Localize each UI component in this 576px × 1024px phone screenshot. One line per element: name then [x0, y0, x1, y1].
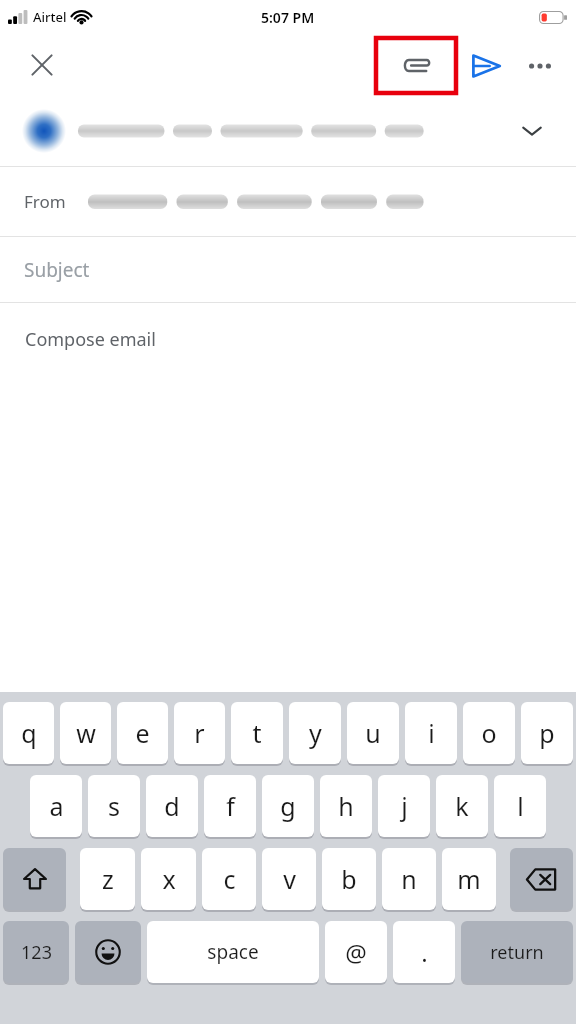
button[interactable]: i — [405, 702, 457, 764]
button[interactable]: Compose email — [0, 303, 576, 375]
button[interactable]: Emoji — [75, 921, 141, 983]
button[interactable]: r — [174, 702, 225, 764]
button[interactable]: v — [262, 848, 316, 910]
button[interactable]: return — [461, 921, 573, 983]
staticText: o — [481, 716, 497, 750]
button[interactable]: t — [231, 702, 283, 764]
button[interactable]: space — [147, 921, 319, 983]
button[interactable]: Expand recipients — [510, 109, 554, 153]
button[interactable]: x — [141, 848, 196, 910]
staticText: y — [309, 716, 322, 750]
button[interactable]: From — [0, 167, 576, 236]
button[interactable]: Close — [14, 37, 70, 93]
button[interactable]: m — [442, 848, 496, 910]
staticText: d — [164, 789, 180, 823]
button[interactable]: s — [88, 775, 140, 837]
button[interactable]: . — [393, 921, 455, 983]
button[interactable]: h — [320, 775, 372, 837]
button[interactable]: Send — [460, 40, 512, 92]
staticText: Airtel — [33, 8, 67, 26]
button[interactable]: Expand recipients — [0, 96, 576, 166]
staticText: Subject — [24, 257, 90, 283]
staticText: g — [280, 789, 296, 823]
staticText: v — [283, 862, 296, 896]
staticText: e — [135, 716, 150, 750]
button[interactable]: n — [382, 848, 436, 910]
staticText: r — [194, 716, 205, 750]
button[interactable]: b — [322, 848, 376, 910]
button[interactable]: c — [202, 848, 256, 910]
staticText: l — [517, 789, 524, 823]
button[interactable]: f — [204, 775, 256, 837]
button[interactable]: Attach file — [376, 38, 456, 93]
staticText: h — [338, 789, 354, 823]
button[interactable]: q — [3, 702, 54, 764]
staticText: From — [24, 190, 66, 213]
staticText: w — [76, 716, 96, 750]
staticText: x — [162, 862, 176, 896]
staticText: t — [252, 716, 262, 750]
button[interactable]: z — [80, 848, 135, 910]
staticText: a — [49, 789, 64, 823]
staticText: Compose email — [25, 327, 156, 352]
staticText: 5:07 PM — [261, 8, 315, 27]
button[interactable]: l — [494, 775, 546, 837]
button[interactable]: y — [289, 702, 341, 764]
staticText: z — [102, 862, 114, 896]
staticText: 123 — [21, 940, 52, 965]
staticText: return — [490, 940, 544, 965]
staticText: . — [421, 936, 428, 969]
staticText: j — [401, 789, 408, 823]
button[interactable]: k — [436, 775, 488, 837]
staticText: k — [455, 789, 469, 823]
button[interactable]: w — [60, 702, 111, 764]
staticText: c — [223, 862, 236, 896]
button[interactable]: d — [146, 775, 198, 837]
button[interactable]: a — [30, 775, 82, 837]
button[interactable]: Shift — [3, 848, 66, 910]
staticText: space — [207, 939, 259, 965]
staticText: m — [457, 862, 481, 896]
button[interactable]: p — [521, 702, 573, 764]
button[interactable]: 123 — [3, 921, 69, 983]
button[interactable]: @ — [325, 921, 387, 983]
button[interactable]: j — [378, 775, 430, 837]
staticText: b — [341, 862, 357, 896]
button[interactable]: o — [463, 702, 515, 764]
button[interactable]: g — [262, 775, 314, 837]
button[interactable]: Delete — [510, 848, 573, 910]
button[interactable]: More options — [514, 40, 566, 92]
staticText: f — [226, 789, 235, 823]
staticText: s — [108, 789, 120, 823]
staticText: p — [539, 716, 555, 750]
button[interactable]: Subject — [0, 237, 576, 302]
button[interactable]: e — [117, 702, 168, 764]
staticText: @ — [345, 936, 367, 969]
button[interactable]: u — [347, 702, 399, 764]
staticText: i — [428, 716, 435, 750]
staticText: q — [21, 716, 37, 750]
staticText: n — [401, 862, 417, 896]
staticText: u — [365, 716, 381, 750]
